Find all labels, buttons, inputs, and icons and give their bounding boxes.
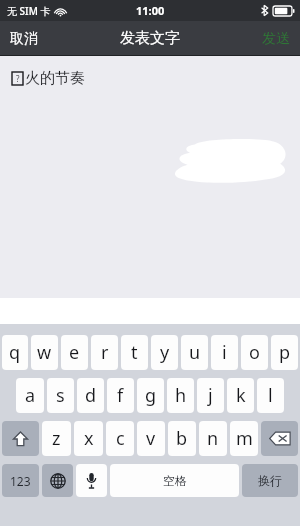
button[interactable]: m (230, 421, 258, 456)
button[interactable]: n (199, 421, 227, 456)
button[interactable]: l (257, 378, 284, 413)
staticText: n (207, 426, 219, 451)
staticText: u (189, 340, 201, 365)
staticText: 换行 (258, 473, 282, 488)
button[interactable]: a (16, 378, 44, 413)
staticText: h (175, 383, 187, 408)
staticText: t (131, 340, 138, 365)
staticText: 空格 (163, 473, 187, 488)
staticText: y (160, 340, 170, 365)
staticText: b (176, 426, 188, 451)
button[interactable]: z (42, 421, 71, 456)
staticText: p (279, 340, 291, 365)
button[interactable]: d (77, 378, 104, 413)
staticText: w (37, 340, 52, 365)
button[interactable]: ? (0, 56, 300, 298)
button[interactable]: b (168, 421, 196, 456)
staticText: d (85, 383, 97, 408)
button[interactable]: h (167, 378, 194, 413)
button[interactable]: i (211, 335, 238, 370)
button[interactable]: u (181, 335, 208, 370)
staticText: k (236, 383, 246, 408)
staticText: s (56, 383, 65, 408)
button[interactable]: s (47, 378, 74, 413)
staticText: o (249, 340, 260, 365)
button[interactable]: w (31, 335, 58, 370)
button[interactable]: Voice input (76, 464, 107, 497)
staticText: i (222, 340, 227, 365)
staticText: f (117, 383, 124, 408)
staticText: j (208, 383, 213, 408)
staticText: 火的节奏 (25, 69, 85, 88)
button[interactable]: 发送 (252, 21, 300, 56)
staticText: c (116, 426, 125, 451)
staticText: 发送 (262, 30, 290, 48)
staticText: 123 (10, 473, 31, 489)
button[interactable]: Backspace (261, 421, 298, 456)
button[interactable]: j (197, 378, 224, 413)
staticText: l (268, 383, 273, 408)
staticText: v (146, 426, 156, 451)
staticText: q (9, 340, 21, 365)
staticText: r (101, 340, 109, 365)
button[interactable]: k (227, 378, 254, 413)
button[interactable]: 123 (2, 464, 39, 497)
button[interactable]: 取消 (0, 21, 48, 56)
button[interactable]: c (106, 421, 134, 456)
staticText: 发表文字 (120, 29, 180, 48)
staticText: x (84, 426, 94, 451)
button[interactable]: q (2, 335, 28, 370)
button[interactable]: p (271, 335, 298, 370)
staticText: z (52, 426, 61, 451)
button[interactable]: o (241, 335, 268, 370)
staticText: 11:00 (136, 3, 165, 18)
button[interactable]: x (74, 421, 103, 456)
staticText: 无 SIM 卡 (7, 4, 51, 18)
button[interactable]: g (137, 378, 164, 413)
staticText: e (69, 340, 80, 365)
staticText: m (236, 426, 253, 451)
button[interactable]: Shift (2, 421, 39, 456)
button[interactable]: v (137, 421, 165, 456)
button[interactable]: 换行 (242, 464, 298, 497)
button[interactable]: y (151, 335, 178, 370)
staticText: 取消 (10, 30, 38, 48)
staticText: a (25, 383, 36, 408)
button[interactable]: 空格 (110, 464, 239, 497)
button[interactable]: e (61, 335, 88, 370)
button[interactable]: t (121, 335, 148, 370)
staticText: g (145, 383, 157, 408)
staticText: ? (16, 73, 20, 84)
button[interactable]: r (91, 335, 118, 370)
button[interactable]: Switch keyboard language (42, 464, 73, 497)
button[interactable]: f (107, 378, 134, 413)
